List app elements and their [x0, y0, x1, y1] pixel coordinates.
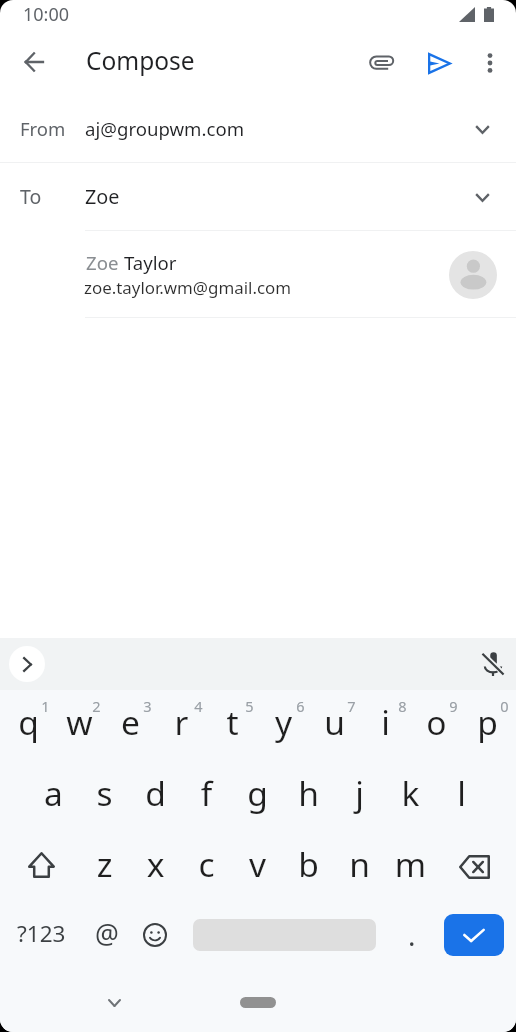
staticText: k: [385, 770, 436, 816]
staticText: 9: [428, 696, 479, 716]
button[interactable]: c: [181, 830, 232, 900]
staticText: c: [181, 841, 232, 887]
button[interactable]: 7: [309, 690, 360, 760]
button[interactable]: Expand toolbar: [9, 646, 45, 682]
button[interactable]: n: [334, 830, 385, 900]
staticText: Taylor: [124, 250, 177, 275]
staticText: 6: [275, 696, 326, 716]
button[interactable]: x: [130, 830, 181, 900]
staticText: 7: [326, 696, 377, 716]
staticText: ?123: [17, 918, 66, 949]
button[interactable]: j: [334, 760, 385, 830]
staticText: x: [130, 841, 181, 887]
staticText: u: [309, 699, 360, 745]
staticText: To: [20, 183, 42, 210]
button[interactable]: Send: [415, 39, 463, 87]
button[interactable]: b: [283, 830, 334, 900]
staticText: w: [54, 699, 105, 745]
staticText: r: [156, 699, 207, 745]
staticText: o: [411, 699, 462, 745]
button[interactable]: Shift: [3, 830, 79, 900]
button[interactable]: 9: [411, 690, 462, 760]
button[interactable]: 6: [258, 690, 309, 760]
staticText: 8: [377, 696, 428, 716]
button[interactable]: Voice input off: [475, 646, 511, 682]
staticText: From: [20, 116, 66, 141]
button[interactable]: Hide keyboard: [94, 981, 134, 1021]
button[interactable]: s: [79, 760, 130, 830]
button[interactable]: l: [436, 760, 487, 830]
button[interactable]: 0: [462, 690, 513, 760]
staticText: t: [207, 699, 258, 745]
button[interactable]: f: [181, 760, 232, 830]
staticText: aj@groupwm.com: [85, 116, 245, 141]
staticText: 2: [71, 696, 122, 716]
staticText: j: [334, 770, 385, 816]
staticText: s: [79, 770, 130, 816]
button[interactable]: h: [283, 760, 334, 830]
staticText: .: [408, 916, 416, 954]
staticText: n: [334, 841, 385, 887]
staticText: a: [28, 770, 79, 816]
staticText: f: [181, 770, 232, 816]
button[interactable]: More options: [466, 39, 514, 87]
staticText: q: [3, 699, 54, 745]
staticText: 1: [20, 696, 71, 716]
staticText: e: [105, 699, 156, 745]
button[interactable]: Space: [180, 900, 389, 970]
staticText: 5: [224, 696, 275, 716]
button[interactable]: g: [232, 760, 283, 830]
button[interactable]: Enter: [435, 900, 513, 970]
button[interactable]: Emoji: [133, 900, 180, 970]
button[interactable]: Back: [10, 39, 58, 87]
staticText: v: [232, 841, 283, 887]
staticText: g: [232, 770, 283, 816]
staticText: y: [258, 699, 309, 745]
button[interactable]: a: [28, 760, 79, 830]
button[interactable]: 5: [207, 690, 258, 760]
staticText: zoe.taylor.wm@gmail.com: [84, 276, 292, 299]
button[interactable]: 8: [360, 690, 411, 760]
button[interactable]: 1: [3, 690, 54, 760]
button[interactable]: @: [80, 900, 133, 970]
button[interactable]: m: [385, 830, 436, 900]
staticText: p: [462, 699, 513, 745]
staticText: Zoe: [85, 183, 120, 210]
button[interactable]: Zoe: [0, 231, 516, 318]
button[interactable]: .: [389, 900, 435, 970]
button[interactable]: 4: [156, 690, 207, 760]
button[interactable]: z: [79, 830, 130, 900]
staticText: 4: [173, 696, 224, 716]
staticText: z: [79, 841, 130, 887]
staticText: 3: [122, 696, 173, 716]
button[interactable]: d: [130, 760, 181, 830]
button[interactable]: From: [0, 96, 516, 163]
button[interactable]: ?123: [3, 900, 80, 970]
staticText: @: [95, 916, 119, 952]
staticText: h: [283, 770, 334, 816]
staticText: 10:00: [23, 2, 70, 27]
button[interactable]: k: [385, 760, 436, 830]
staticText: d: [130, 770, 181, 816]
button[interactable]: To: [0, 163, 516, 231]
staticText: i: [360, 699, 411, 745]
staticText: 0: [479, 696, 516, 716]
button[interactable]: Attach file: [357, 38, 405, 86]
staticText: Compose: [86, 44, 195, 77]
button[interactable]: v: [232, 830, 283, 900]
button[interactable]: 2: [54, 690, 105, 760]
button[interactable]: 3: [105, 690, 156, 760]
staticText: m: [385, 841, 436, 887]
staticText: b: [283, 841, 334, 887]
staticText: l: [436, 770, 487, 816]
staticText: Zoe: [86, 250, 124, 275]
button[interactable]: Backspace: [436, 830, 513, 900]
